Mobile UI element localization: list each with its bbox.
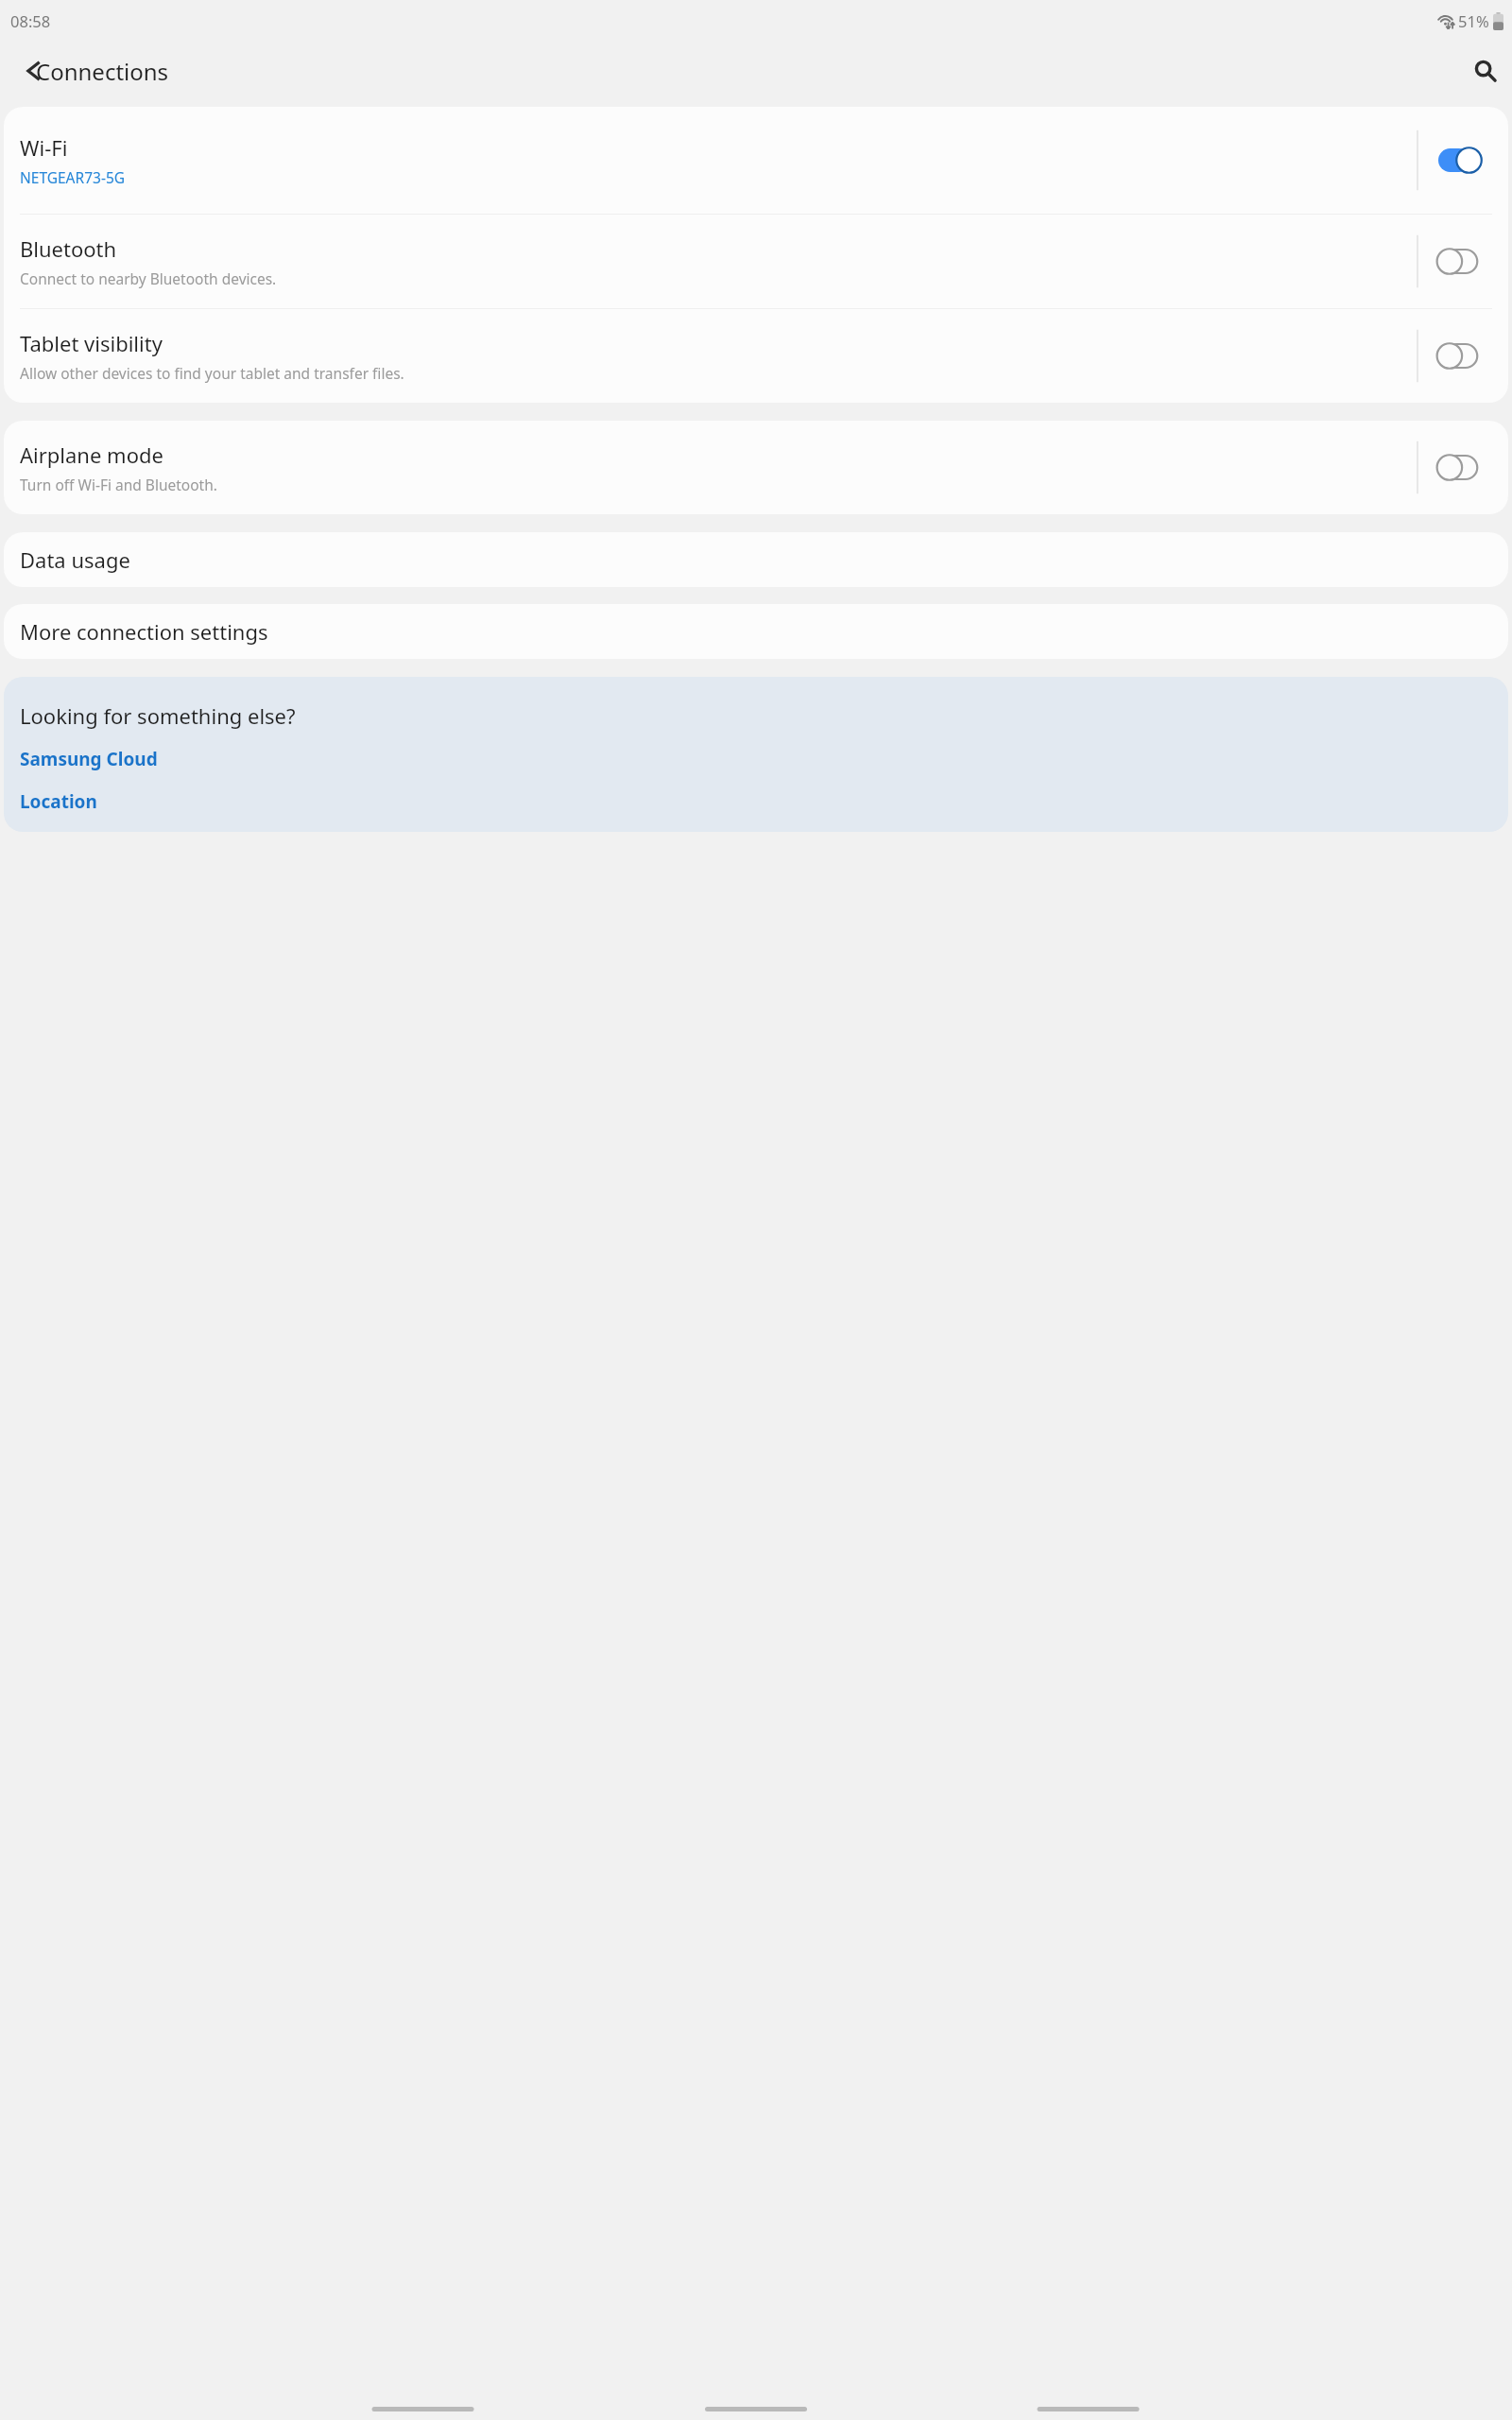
button[interactable]: Wi-Fi toggle bbox=[1417, 107, 1499, 214]
staticText: Airplane mode bbox=[20, 441, 163, 469]
button[interactable]: Search bbox=[1463, 46, 1508, 95]
staticText: More connection settings bbox=[20, 617, 268, 646]
staticText: Samsung Cloud bbox=[20, 747, 158, 771]
button[interactable]: Location bbox=[4, 785, 1508, 819]
staticText: Data usage bbox=[20, 545, 130, 574]
button[interactable]: Airplane mode bbox=[4, 421, 1508, 514]
button[interactable]: Tablet visibility bbox=[4, 309, 1508, 403]
button[interactable]: Bluetooth bbox=[4, 215, 1508, 308]
staticText: Tablet visibility bbox=[20, 329, 163, 357]
staticText: Connections bbox=[36, 56, 169, 87]
staticText: Location bbox=[20, 789, 97, 814]
staticText: Connect to nearby Bluetooth devices. bbox=[20, 268, 277, 288]
button[interactable]: Bluetooth toggle bbox=[1417, 215, 1499, 308]
staticText: 51% bbox=[1458, 10, 1489, 31]
button[interactable]: Data usage bbox=[4, 532, 1508, 587]
button[interactable]: Back bbox=[11, 48, 57, 94]
button[interactable]: Tablet visibility toggle bbox=[1417, 309, 1499, 403]
staticText: Wi-Fi bbox=[20, 133, 68, 162]
button[interactable]: Wi-Fi bbox=[4, 107, 1508, 214]
button[interactable]: More connection settings bbox=[4, 604, 1508, 659]
button[interactable]: Samsung Cloud bbox=[4, 742, 1508, 776]
staticText: Bluetooth bbox=[20, 234, 117, 263]
staticText: Turn off Wi-Fi and Bluetooth. bbox=[20, 475, 217, 494]
staticText: Allow other devices to find your tablet … bbox=[20, 363, 404, 383]
button[interactable]: Airplane mode toggle bbox=[1417, 421, 1499, 514]
staticText: 08:58 bbox=[10, 10, 51, 31]
staticText: Looking for something else? bbox=[20, 701, 296, 730]
staticText: NETGEAR73-5G bbox=[20, 167, 126, 187]
